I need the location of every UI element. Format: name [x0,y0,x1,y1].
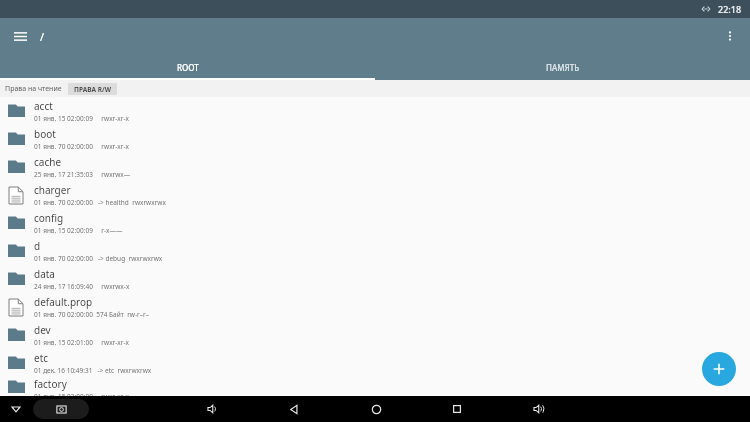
button[interactable]: etc [0,349,750,377]
button[interactable]: Collapse [5,398,27,420]
staticText: etc [34,351,49,365]
button[interactable]: charger [0,181,750,209]
staticText: 25 янв. 17 21:35:03 rwxrwx— [34,170,131,179]
staticText: 01 дек. 16 10:49:31 -> etc rwxrwxrwx [34,366,152,375]
staticText: dev [34,323,51,337]
staticText: 01 янв. 70 02:00:00 -> healthd rwxrwxrwx [34,198,166,207]
button[interactable]: Volume down [201,397,225,421]
button[interactable]: data [0,265,750,293]
staticText: 24 янв. 17 16:09:40 rwxrwx-x [34,282,130,291]
button[interactable]: ПРАВА R/W [68,83,117,95]
staticText: 01 янв. 70 02:00:00 rwxr-xr-x [34,142,129,151]
staticText: 01 янв. 70 02:00:00 574 Байт rw-r–r– [34,310,149,319]
staticText: 01 янв. 70 02:00:00 -> debug rwxrwxrwx [34,254,163,263]
staticText: boot [34,127,56,141]
staticText: 22:18 [718,3,742,15]
staticText: Права на чтение [5,84,62,94]
staticText: d [34,239,41,253]
button[interactable]: ПАМЯТЬ [375,54,750,80]
button[interactable]: dev [0,321,750,349]
button[interactable]: default.prop [0,293,750,321]
button[interactable]: Volume up [527,397,551,421]
button[interactable]: factory [0,377,750,396]
button[interactable]: Home [364,397,388,421]
button[interactable]: ROOT [0,54,375,80]
staticText: 01 янв. 15 02:00:09 rwxr-xr-x [34,392,129,396]
button[interactable]: boot [0,125,750,153]
staticText: ПРАВА R/W [74,85,111,94]
staticText: factory [34,377,67,391]
staticText: 01 янв. 15 02:00:09 r-x—— [34,226,123,235]
button[interactable]: d [0,237,750,265]
staticText: / [40,29,45,44]
button[interactable]: More options [716,22,744,50]
button[interactable]: cache [0,153,750,181]
staticText: data [34,267,55,281]
button[interactable]: Recent apps [445,397,469,421]
button[interactable]: Open navigation drawer [6,22,34,50]
button[interactable]: Add [702,352,736,386]
staticText: 01 янв. 15 02:01:00 rwxr-xr-x [34,338,129,347]
staticText: charger [34,183,71,197]
staticText: acct [34,99,53,113]
button[interactable]: config [0,209,750,237]
button[interactable]: acct [0,97,750,125]
staticText: ROOT [177,62,199,73]
button[interactable]: Back [282,397,306,421]
staticText: default.prop [34,295,93,309]
staticText: ПАМЯТЬ [546,62,580,73]
staticText: config [34,211,64,225]
staticText: cache [34,155,62,169]
staticText: 01 янв. 15 02:00:09 rwxr-xr-x [34,114,129,123]
button[interactable]: Screenshot [33,399,89,419]
